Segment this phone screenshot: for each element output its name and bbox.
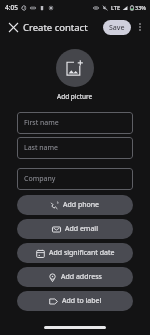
staticText: First name [24,118,59,128]
button[interactable]: More options [132,19,148,35]
staticText: Add address [61,272,102,282]
button[interactable]: Add significant date [17,243,133,263]
staticText: Add email [65,224,98,234]
button[interactable]: Add phone [17,195,133,215]
staticText: Last name [24,143,59,153]
button[interactable]: Save [103,20,131,35]
staticText: 4:05 [5,3,18,12]
button[interactable]: Add email [17,219,133,239]
button[interactable]: Company [17,168,133,190]
staticText: Add to label [62,296,102,306]
staticText: Company [24,174,56,184]
staticText: Add significant date [49,248,115,258]
button[interactable]: Add address [17,267,133,287]
staticText: Save [109,23,125,33]
button[interactable]: Add to label [17,291,133,311]
button[interactable]: First name [17,112,133,134]
staticText: 33% [135,4,146,11]
staticText: Create contact [23,21,88,34]
button[interactable]: Last name [17,137,133,159]
staticText: Add phone [63,200,100,210]
button[interactable]: Close [4,18,22,36]
staticText: Add picture [57,92,93,101]
staticText: LTE [111,4,120,11]
button[interactable]: Add picture [56,49,94,87]
